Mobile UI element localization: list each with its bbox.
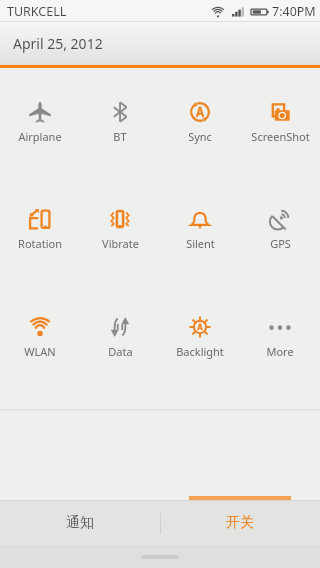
staticText: Data bbox=[108, 344, 133, 359]
staticText: 开关 bbox=[226, 514, 254, 532]
staticText: TURKCELL bbox=[7, 3, 67, 20]
button[interactable]: Backlight bbox=[160, 316, 240, 359]
staticText: More bbox=[266, 344, 294, 359]
button[interactable]: More bbox=[240, 316, 320, 359]
staticText: BT bbox=[113, 129, 127, 144]
button[interactable]: ScreenShot bbox=[240, 101, 320, 144]
other: WLAN bbox=[29, 316, 51, 338]
staticText: GPS bbox=[270, 236, 291, 251]
button[interactable]: Airplane bbox=[0, 101, 80, 144]
staticText: Silent bbox=[186, 236, 215, 251]
other: Airplane bbox=[29, 101, 51, 123]
button[interactable]: 通知 bbox=[0, 500, 160, 546]
staticText: Sync bbox=[188, 129, 212, 144]
staticText: 通知 bbox=[66, 514, 94, 532]
staticText: Rotation bbox=[18, 236, 62, 251]
other: ScreenShot bbox=[269, 101, 291, 123]
other: Data bbox=[109, 316, 131, 338]
other: Sync bbox=[189, 101, 211, 123]
button[interactable]: Rotation bbox=[0, 208, 80, 251]
staticText: 7:40PM bbox=[272, 3, 316, 20]
staticText: ScreenShot bbox=[251, 129, 310, 144]
other: Silent bbox=[189, 208, 211, 230]
other: GPS bbox=[269, 208, 291, 230]
button[interactable]: BT bbox=[80, 101, 160, 144]
other: More bbox=[269, 316, 291, 338]
other: Rotation bbox=[29, 208, 51, 230]
other: Vibrate bbox=[109, 208, 131, 230]
button[interactable]: Silent bbox=[160, 208, 240, 251]
staticText: Vibrate bbox=[102, 236, 139, 251]
button[interactable]: WLAN bbox=[0, 316, 80, 359]
button[interactable]: 开关 bbox=[160, 500, 320, 546]
button[interactable]: Vibrate bbox=[80, 208, 160, 251]
button[interactable]: GPS bbox=[240, 208, 320, 251]
staticText: Backlight bbox=[176, 344, 224, 359]
other: Backlight bbox=[189, 316, 211, 338]
button[interactable]: Sync bbox=[160, 101, 240, 144]
staticText: Airplane bbox=[18, 129, 62, 144]
staticText: April 25, 2012 bbox=[13, 34, 103, 53]
other: BT bbox=[109, 101, 131, 123]
staticText: WLAN bbox=[24, 344, 56, 359]
button[interactable]: Data bbox=[80, 316, 160, 359]
